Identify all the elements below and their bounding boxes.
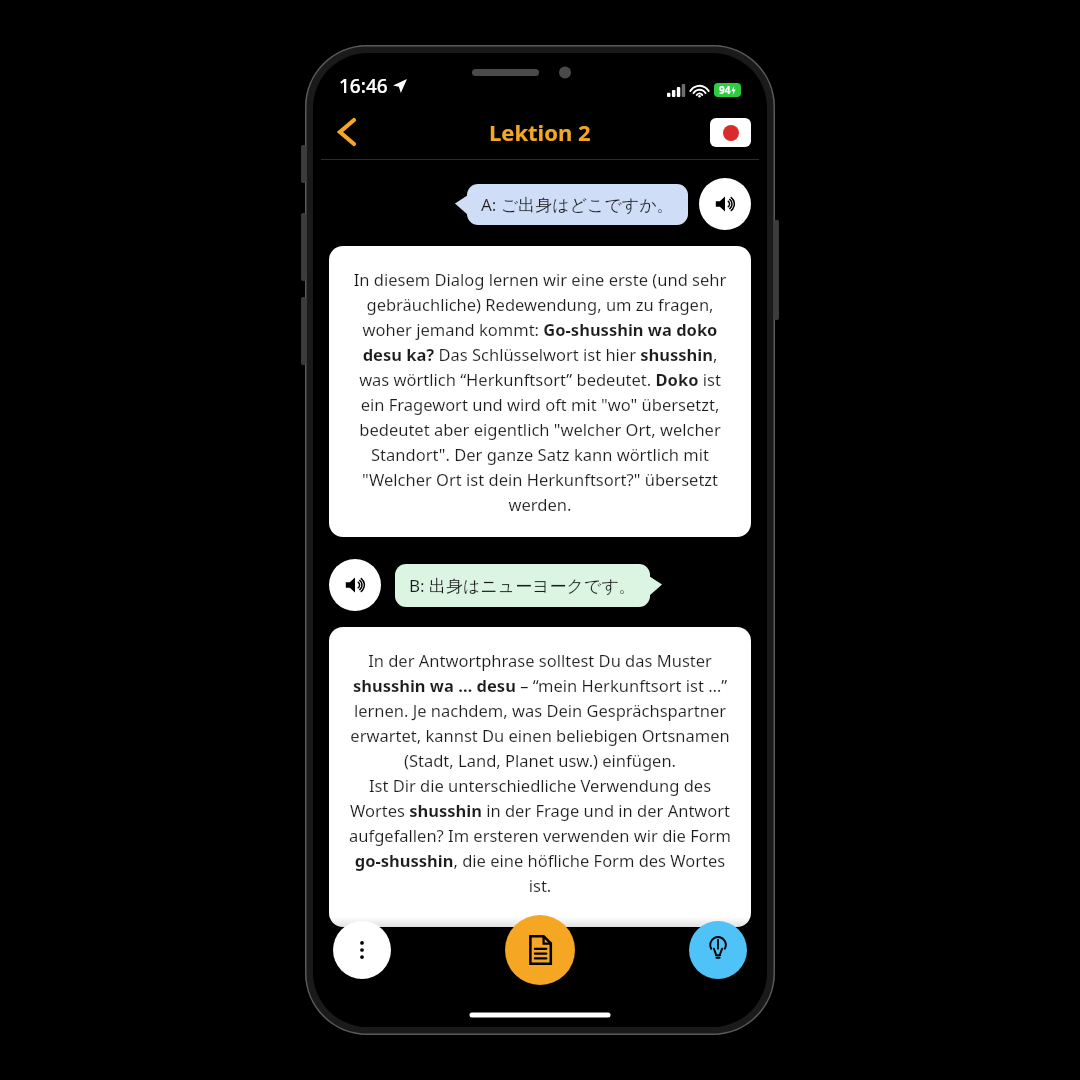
button[interactable]: A: ご出身はどこですか。 xyxy=(467,184,688,225)
staticText: 94 xyxy=(719,83,731,97)
staticText: In der Antwortphrase solltest Du das Mus… xyxy=(347,649,733,896)
button[interactable]: More options xyxy=(333,921,391,979)
staticText: A: ご出身はどこですか。 xyxy=(481,193,674,216)
button[interactable]: Language Japanese xyxy=(710,118,751,147)
button[interactable]: Hint xyxy=(689,921,747,979)
staticText: Lektion 2 xyxy=(489,117,591,147)
button[interactable]: Play audio xyxy=(329,559,381,611)
button[interactable]: Back xyxy=(325,110,369,154)
staticText: B: 出身はニューヨークです。 xyxy=(409,574,636,597)
button[interactable]: In der Antwortphrase solltest Du das Mus… xyxy=(329,627,751,927)
button[interactable]: In diesem Dialog lernen wir eine erste (… xyxy=(329,246,751,537)
staticText: 16:46 xyxy=(339,73,388,99)
button[interactable]: Play audio xyxy=(699,178,751,230)
staticText: In diesem Dialog lernen wir eine erste (… xyxy=(347,268,733,515)
button[interactable]: B: 出身はニューヨークです。 xyxy=(395,564,650,607)
button[interactable]: Transcript xyxy=(505,915,575,985)
